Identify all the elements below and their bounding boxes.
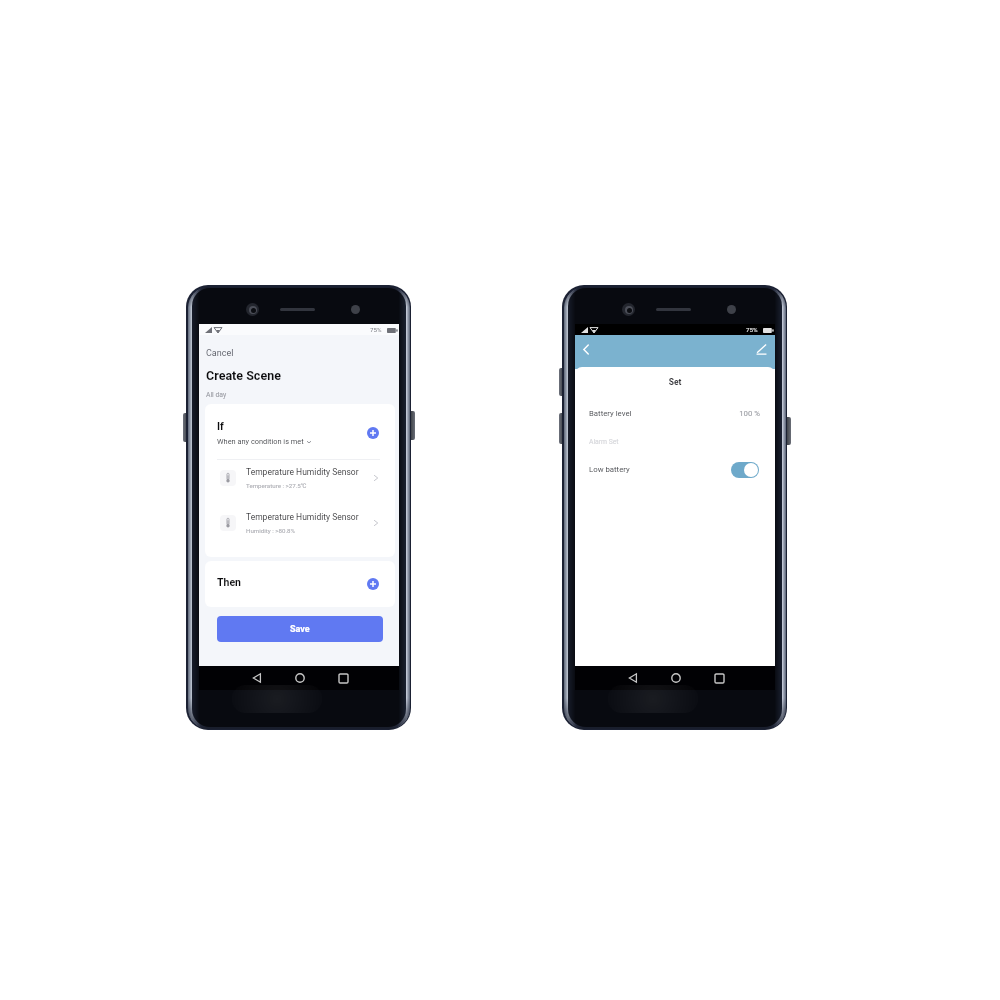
button[interactable]: Temperature Humidity Sensor [205,503,395,548]
button[interactable]: Cancel [206,348,234,359]
button[interactable]: Back [623,668,643,688]
button[interactable]: Recents [333,668,353,688]
staticText: Create Scene [206,368,281,383]
button[interactable]: Save [217,616,383,642]
button[interactable]: Edit [753,341,770,358]
button[interactable]: Recents [709,668,729,688]
staticText: Then [217,576,241,588]
button[interactable]: Home [290,668,310,688]
staticText: 100 % [726,409,760,418]
button[interactable]: Battery level [575,405,775,423]
staticText: All day [206,391,227,399]
staticText: When any condition is met [217,437,304,446]
staticText: Save [290,624,310,635]
button[interactable]: Back [247,668,267,688]
staticText: 75% [746,326,758,333]
button[interactable]: Then [205,561,395,607]
button[interactable]: Home [666,668,686,688]
staticText: Alarm Set [589,438,619,446]
staticText: Battery level [589,409,632,418]
staticText: Temperature Humidity Sensor [246,512,359,522]
staticText: Humidity : >80.8% [246,527,296,534]
button[interactable]: Back [578,341,595,358]
staticText: Temperature Humidity Sensor [246,467,359,477]
button[interactable]: Low battery [575,460,775,480]
staticText: If [217,420,224,432]
staticText: Temperature : >27.5℃ [246,482,307,489]
staticText: Low battery [589,465,630,474]
staticText: 75% [370,326,382,333]
button[interactable]: Add action [367,578,379,590]
button[interactable]: Temperature Humidity Sensor [205,458,395,503]
button[interactable]: Add condition [367,427,379,439]
button[interactable]: Low battery toggle [731,462,759,478]
staticText: Set [575,377,775,387]
